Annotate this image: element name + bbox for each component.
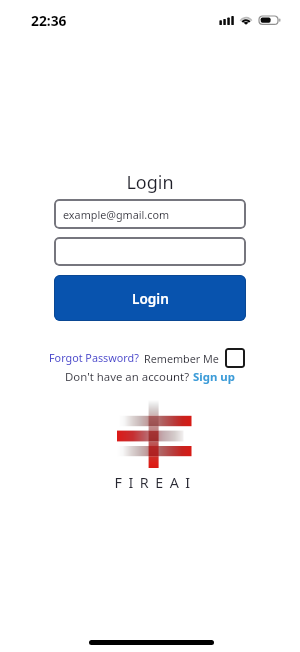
button[interactable]: Login xyxy=(54,275,246,321)
button[interactable]: Remember Me xyxy=(144,348,245,368)
staticText: Forgot Password? xyxy=(49,350,139,365)
staticText: 22:36 xyxy=(31,11,67,30)
button[interactable]: Remember me checkbox xyxy=(225,348,245,368)
button[interactable]: Password xyxy=(54,237,246,266)
staticText: Login xyxy=(132,289,169,308)
button[interactable]: Sign up xyxy=(193,369,235,385)
button[interactable]: example@gmail.com xyxy=(54,199,246,229)
staticText: Login xyxy=(0,170,300,195)
staticText: Remember Me xyxy=(144,351,219,366)
staticText: Don't have an account? xyxy=(65,369,193,385)
button[interactable]: Forgot Password? xyxy=(49,350,139,365)
staticText: Sign up xyxy=(193,369,235,385)
staticText: example@gmail.com xyxy=(63,207,170,222)
staticText: F I R E A I xyxy=(3,473,300,492)
